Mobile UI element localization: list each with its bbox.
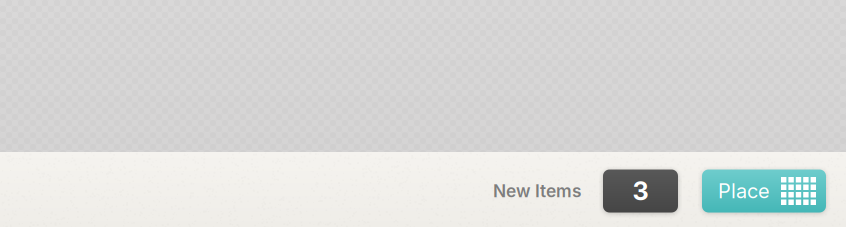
staticText: 3 xyxy=(632,176,648,206)
button[interactable]: Place xyxy=(702,169,826,212)
staticText: Place xyxy=(718,179,770,203)
button[interactable]: New items count, 3 xyxy=(603,169,678,212)
staticText: New Items xyxy=(493,180,582,201)
